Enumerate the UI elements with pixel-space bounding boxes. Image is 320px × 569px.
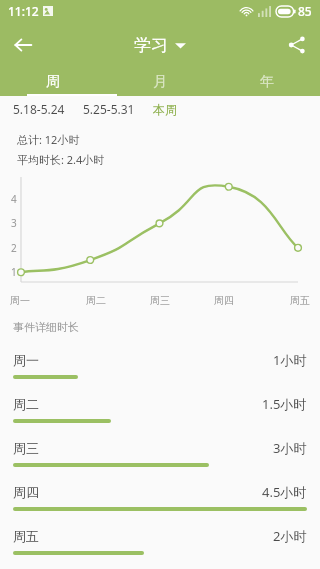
button[interactable]: 周三 [0,430,320,474]
staticText: 事件详细时长 [13,320,79,334]
staticText: 2 [11,241,17,255]
staticText: 学习 [134,35,168,56]
button[interactable]: Back [0,22,46,68]
staticText: 1 [11,265,17,279]
button[interactable]: 月 [106,68,213,96]
staticText: 周三 [150,294,170,307]
button[interactable]: Share [274,22,320,68]
staticText: 年 [260,73,274,91]
staticText: 总计: 12小时 [17,132,80,147]
staticText: 周五 [13,528,39,544]
staticText: 1.5小时 [262,395,307,413]
staticText: 4 [11,192,17,206]
staticText: 周 [46,73,60,91]
staticText: 周一 [10,294,30,307]
button[interactable]: 5.18-5.24 [13,101,65,117]
staticText: 周四 [214,294,234,307]
button[interactable]: 学习 [134,35,186,56]
button[interactable]: 周二 [0,386,320,430]
staticText: 85 [298,3,312,19]
staticText: 3小时 [273,439,307,457]
button[interactable]: 周一 [0,342,320,386]
staticText: 4.5小时 [262,483,307,501]
button[interactable]: 本周 [153,102,177,117]
staticText: 3 [11,216,17,230]
button[interactable]: 年 [213,68,320,96]
button[interactable]: 周五 [0,518,320,562]
staticText: 1小时 [273,351,307,369]
staticText: 2小时 [273,527,307,545]
staticText: 月 [153,73,167,91]
staticText: 周五 [290,294,310,307]
button[interactable]: 周四 [0,474,320,518]
staticText: 平均时长: 2.4小时 [17,152,105,167]
staticText: 周三 [13,440,39,456]
staticText: 周二 [86,294,106,307]
staticText: 周一 [13,352,39,368]
staticText: 11:12 [8,3,39,19]
button[interactable]: 5.25-5.31 [83,101,135,117]
staticText: 周二 [13,396,39,412]
staticText: 周四 [13,484,39,500]
button[interactable]: 周 [0,68,106,96]
